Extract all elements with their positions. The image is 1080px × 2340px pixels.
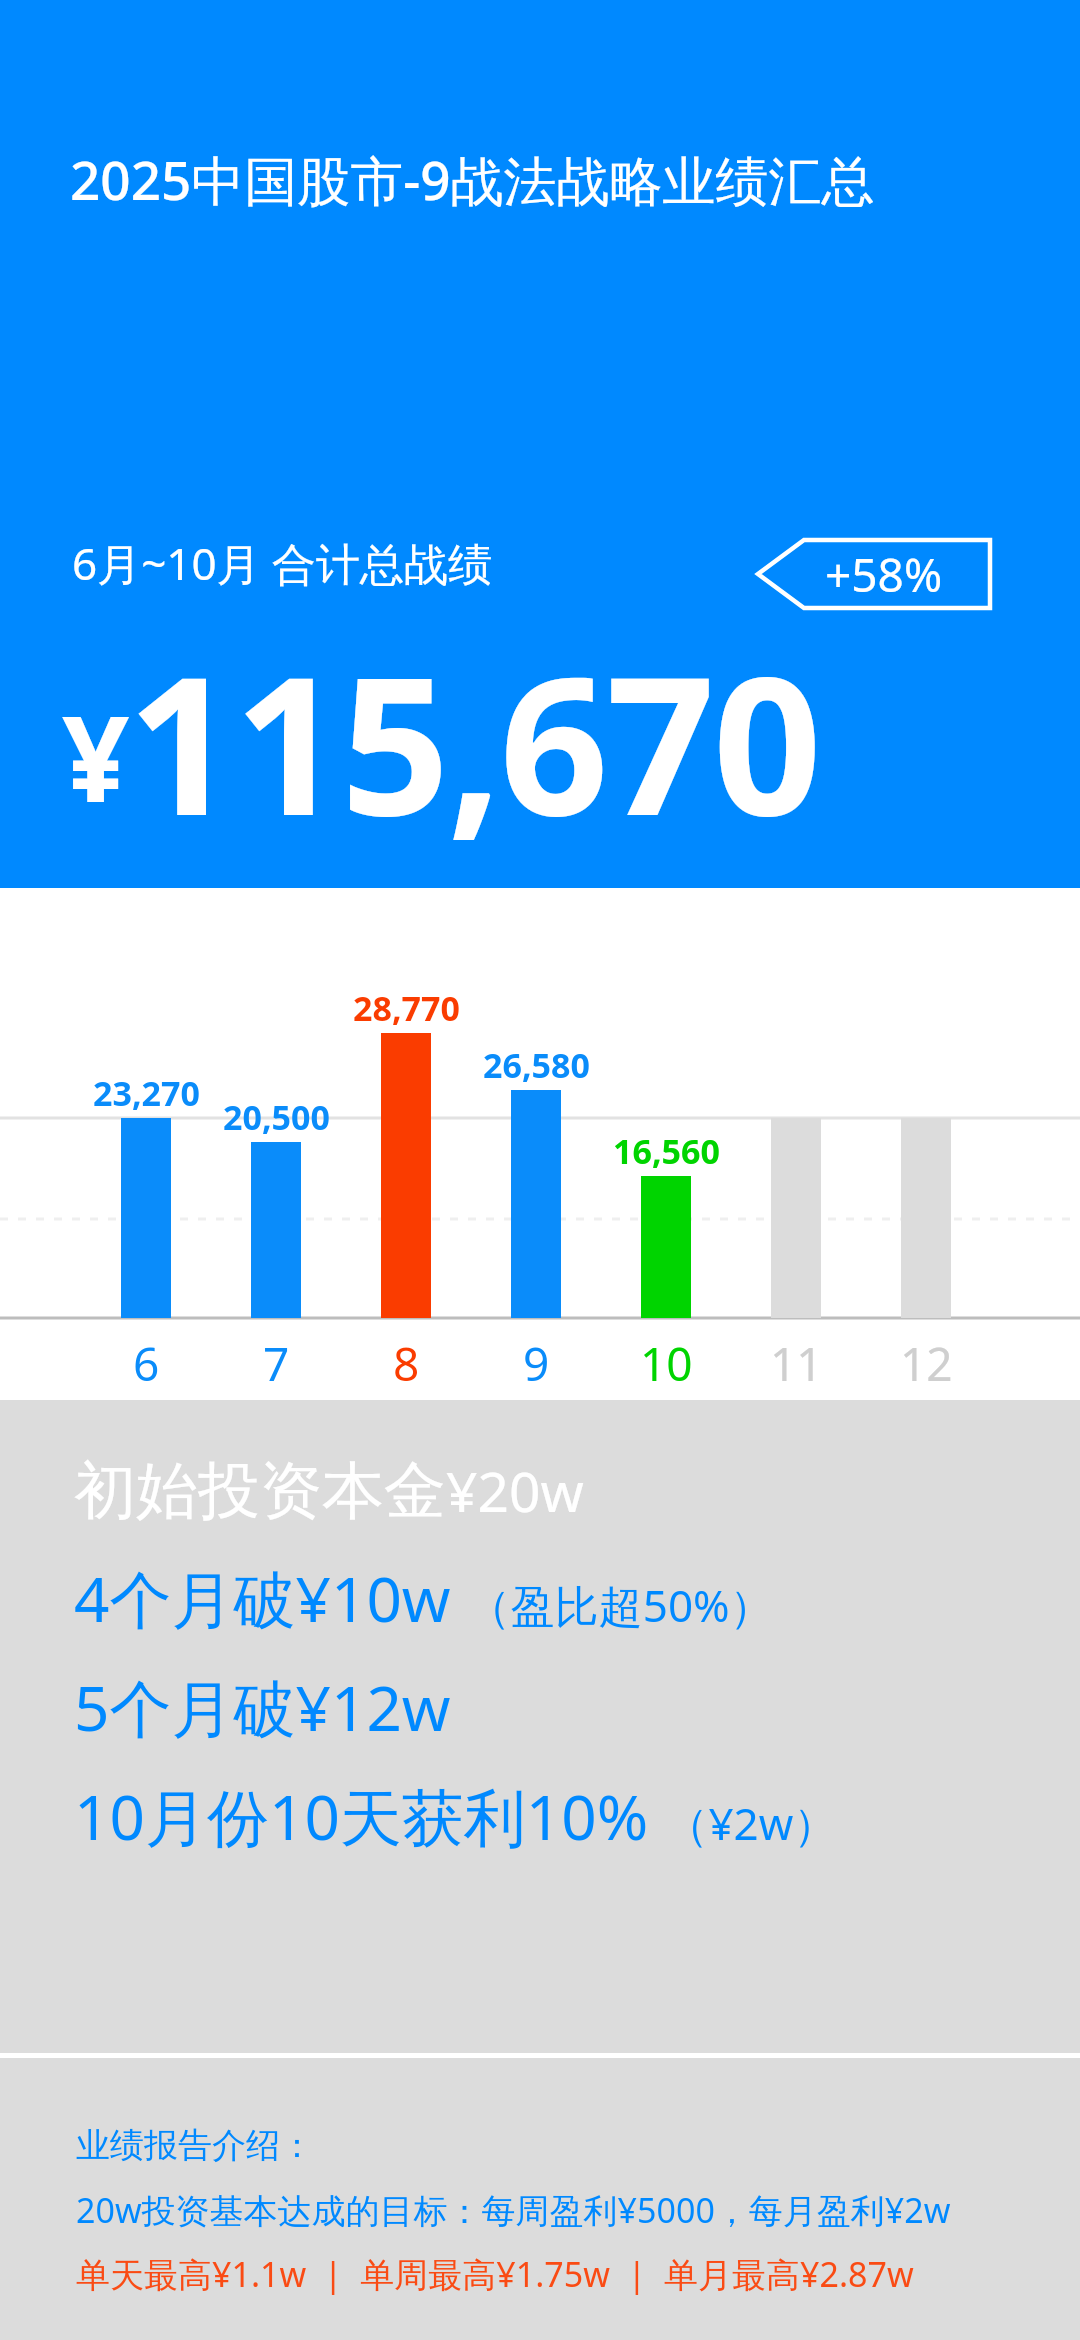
staticText: 11 [770, 1332, 823, 1395]
staticText: 6 [133, 1332, 160, 1395]
staticText: 16,560 [613, 1128, 720, 1174]
staticText: 6月~10月 合计总战绩 [72, 533, 493, 593]
staticText: 初始投资本金¥20w [74, 1452, 584, 1530]
staticText: 业绩报告介绍： [76, 2124, 314, 2167]
staticText: 20,500 [223, 1094, 330, 1140]
staticText: 10 [640, 1332, 693, 1395]
staticText: 7 [263, 1332, 290, 1395]
button[interactable]: +58% [758, 540, 990, 608]
staticText: +58% [825, 543, 943, 606]
staticText: 10月份10天获利10% （¥2w） [74, 1774, 838, 1859]
staticText: 2025中国股市-9战法战略业绩汇总 [70, 143, 875, 215]
staticText: 单天最高¥1.1w | 单周最高¥1.75w | 单月最高¥2.87w [76, 2251, 914, 2297]
staticText: 12 [900, 1332, 953, 1395]
staticText: 26,580 [483, 1042, 590, 1088]
staticText: 20w投资基本达成的目标：每周盈利¥5000，每月盈利¥2w [76, 2187, 951, 2233]
staticText: 28,770 [353, 985, 460, 1031]
staticText: 23,270 [93, 1070, 200, 1116]
staticText: 5个月破¥12w [74, 1665, 451, 1750]
staticText: 9 [523, 1332, 550, 1395]
staticText: 4个月破¥10w （盈比超50%） [74, 1556, 774, 1641]
staticText: ¥115,670 [62, 612, 820, 871]
staticText: 8 [393, 1332, 420, 1395]
